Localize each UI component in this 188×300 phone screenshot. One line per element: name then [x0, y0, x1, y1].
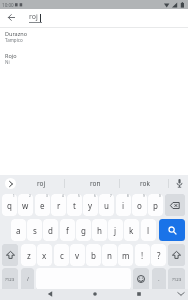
staticText: 4 — [62, 194, 64, 198]
staticText: s — [33, 225, 37, 236]
button[interactable]: s — [27, 219, 42, 241]
staticText: 0 — [159, 194, 161, 198]
button[interactable] — [165, 194, 185, 216]
button[interactable] — [47, 291, 53, 297]
staticText: h — [97, 225, 102, 236]
button[interactable]: e — [35, 194, 50, 216]
button[interactable]: q — [2, 194, 17, 216]
staticText: 7 — [110, 194, 112, 198]
staticText: ! — [141, 250, 144, 261]
button[interactable] — [2, 244, 18, 266]
button[interactable]: m — [118, 244, 133, 266]
button[interactable]: u — [99, 194, 114, 216]
staticText: u — [104, 200, 109, 211]
staticText: / — [27, 276, 29, 283]
staticText: Rojo — [5, 52, 17, 59]
button[interactable]: k — [124, 219, 139, 241]
staticText: k — [129, 225, 134, 236]
button[interactable] — [0, 9, 188, 27]
staticText: v — [75, 250, 80, 261]
staticText: o — [137, 200, 142, 211]
button[interactable]: ron — [78, 177, 112, 190]
staticText: 6 — [94, 194, 96, 198]
staticText: ron — [90, 179, 101, 188]
button[interactable]: . — [152, 268, 166, 290]
staticText: 1 — [13, 194, 15, 198]
staticText: . — [158, 275, 160, 283]
button[interactable]: l — [141, 219, 156, 241]
staticText: i — [122, 200, 125, 211]
staticText: n — [107, 250, 112, 261]
staticText: ? — [157, 250, 161, 261]
staticText: ?123 — [172, 276, 182, 282]
button[interactable]: o — [132, 194, 147, 216]
button[interactable]: z — [21, 244, 36, 266]
button[interactable]: x — [37, 244, 52, 266]
staticText: roj — [37, 179, 46, 188]
staticText: p — [153, 200, 158, 211]
button[interactable] — [133, 268, 149, 290]
staticText: m — [122, 250, 130, 261]
staticText: t — [73, 200, 76, 211]
staticText: Durazno — [5, 30, 27, 37]
staticText: z — [27, 250, 31, 261]
staticText: d — [48, 225, 53, 236]
button[interactable]: y — [83, 194, 98, 216]
button[interactable]: c — [54, 244, 69, 266]
button[interactable]: ?123 — [168, 268, 185, 290]
button[interactable]: i — [116, 194, 131, 216]
staticText: g — [81, 225, 86, 236]
button[interactable]: / — [21, 268, 34, 290]
button[interactable]: ? — [151, 244, 166, 266]
button[interactable]: j — [108, 219, 123, 241]
button[interactable]: w — [18, 194, 33, 216]
staticText: e — [40, 200, 45, 211]
staticText: l — [147, 225, 150, 236]
button[interactable]: n — [102, 244, 117, 266]
button[interactable]: roj — [24, 177, 58, 190]
staticText: ?123 — [5, 276, 15, 282]
button[interactable]: Rojo — [5, 52, 17, 65]
staticText: f — [66, 225, 69, 236]
button[interactable] — [5, 178, 16, 189]
button[interactable]: Durazno — [5, 30, 27, 43]
button[interactable] — [168, 244, 185, 266]
staticText: 10:00 — [2, 2, 14, 8]
button[interactable]: ?123 — [2, 268, 18, 290]
staticText: 8 — [127, 194, 129, 198]
staticText: y — [88, 200, 93, 211]
staticText: a — [16, 225, 21, 236]
button[interactable]: rok — [128, 177, 162, 190]
button[interactable] — [176, 179, 183, 188]
staticText: rok — [140, 179, 150, 188]
staticText: 5 — [78, 194, 80, 198]
staticText: b — [91, 250, 96, 261]
button[interactable]: d — [43, 219, 58, 241]
button[interactable]: f — [60, 219, 75, 241]
button[interactable]: v — [70, 244, 85, 266]
button[interactable]: g — [76, 219, 91, 241]
staticText: j — [114, 225, 117, 236]
button[interactable]: b — [86, 244, 101, 266]
staticText: x — [42, 250, 47, 261]
button[interactable] — [159, 219, 185, 241]
staticText: Ni — [5, 59, 10, 65]
button[interactable] — [36, 268, 131, 290]
button[interactable]: p — [148, 194, 163, 216]
button[interactable]: t — [67, 194, 82, 216]
staticText: 3 — [46, 194, 48, 198]
staticText: c — [60, 250, 64, 261]
staticText: 2 — [29, 194, 31, 198]
button[interactable]: h — [92, 219, 107, 241]
staticText: Tampico — [5, 37, 23, 43]
button[interactable]: ! — [135, 244, 150, 266]
staticText: r — [57, 200, 61, 211]
button[interactable]: a — [11, 219, 26, 241]
staticText: 9 — [143, 194, 145, 198]
button[interactable] — [177, 292, 185, 296]
button[interactable]: r — [51, 194, 66, 216]
staticText: w — [22, 200, 29, 211]
button[interactable] — [136, 291, 142, 297]
staticText: roj — [29, 12, 38, 22]
button[interactable] — [92, 291, 98, 297]
